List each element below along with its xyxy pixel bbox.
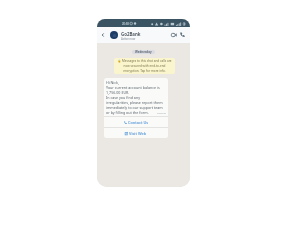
button[interactable]: 🔒 Messages to this chat and calls are no… — [114, 58, 175, 74]
staticText: 20:58 — [122, 22, 129, 26]
staticText: Go2Bank — [121, 31, 141, 37]
staticText: 4:02 PM — [157, 111, 166, 114]
button[interactable]: Visit Web — [104, 128, 168, 138]
staticText: Hi Nick, Your current account balance is… — [106, 80, 163, 115]
button[interactable]: Go2Bank contact info — [109, 29, 165, 41]
button[interactable]: Contact Us — [104, 117, 168, 127]
staticText: Contact Us — [128, 120, 149, 125]
staticText: 🔒 Messages to this chat and calls are no… — [117, 59, 172, 73]
button[interactable]: Call — [178, 30, 187, 39]
button[interactable]: Video call — [169, 30, 178, 39]
staticText: Active now — [121, 37, 136, 41]
staticText: Visit Web — [129, 131, 147, 136]
button[interactable]: Back — [99, 31, 107, 39]
staticText: Wednesday — [135, 50, 152, 54]
